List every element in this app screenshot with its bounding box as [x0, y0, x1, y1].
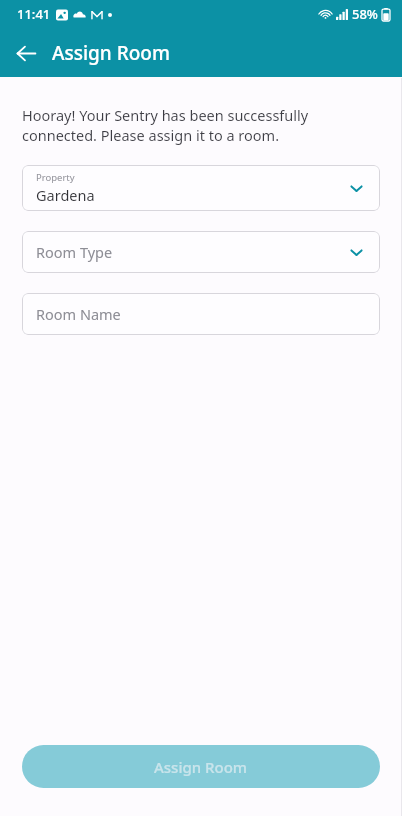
staticText: Gardena	[36, 185, 95, 205]
staticText: Room Type	[36, 242, 113, 262]
staticText: Hooray! Your Sentry has been successfull…	[22, 105, 309, 146]
staticText: 58%	[352, 5, 378, 23]
button[interactable]: Room Name	[22, 293, 380, 335]
staticText: 11:41	[17, 5, 51, 23]
staticText: Assign Room	[52, 40, 170, 66]
staticText: Room Name	[36, 304, 121, 324]
button[interactable]: Property	[22, 165, 380, 211]
button[interactable]: Assign Room	[22, 745, 380, 788]
staticText: Property	[36, 171, 75, 184]
staticText: Assign Room	[154, 757, 248, 777]
button[interactable]: Room Type	[22, 231, 380, 273]
button[interactable]: Back	[8, 35, 44, 71]
